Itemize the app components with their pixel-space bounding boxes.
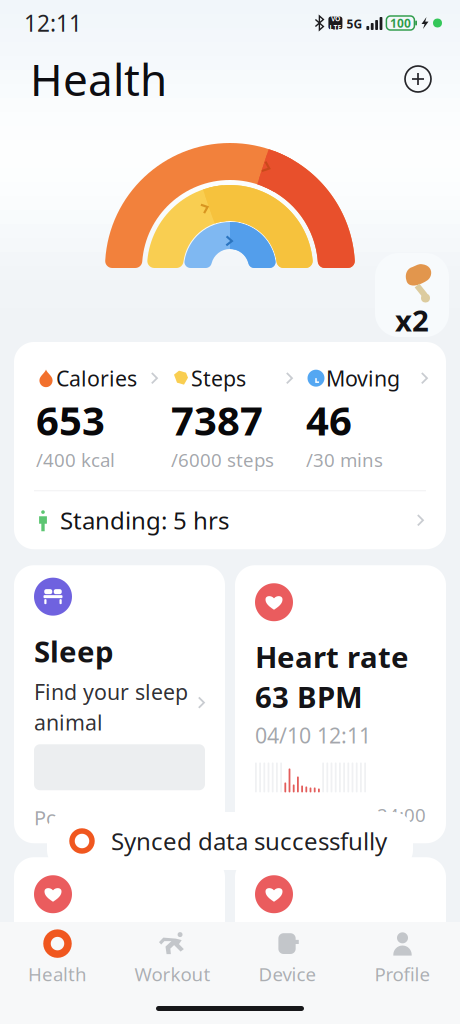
button[interactable]: Standing: 5 hrs [14, 491, 446, 549]
staticText: 100 [390, 15, 411, 31]
button[interactable]: Workout [115, 922, 230, 994]
staticText: Synced data successfully [111, 825, 387, 857]
staticText: Heart rate [255, 637, 409, 676]
staticText: Health [30, 50, 167, 108]
staticText: /30 mins [306, 447, 383, 472]
button[interactable]: Calories [36, 364, 171, 472]
staticText: 653 [36, 393, 105, 446]
staticText: Steps [191, 364, 246, 392]
staticText: x2 [395, 300, 429, 339]
button[interactable]: Steps [171, 364, 306, 472]
staticText: /6000 steps [171, 447, 274, 472]
staticText: Profile [374, 962, 430, 986]
staticText: 12:11 [24, 8, 82, 38]
staticText: Find your sleep [34, 678, 188, 706]
staticText: 5G [346, 16, 362, 32]
button[interactable]: Health [0, 922, 115, 994]
staticText: 24:00 [377, 802, 426, 827]
staticText: Calories [56, 364, 137, 392]
staticText: LTE [329, 23, 341, 32]
button[interactable]: Profile [345, 922, 460, 994]
staticText: Health [28, 962, 87, 986]
button[interactable]: Sleep [14, 565, 225, 843]
staticText: Standing: 5 hrs [60, 504, 229, 536]
staticText: Poor [34, 804, 78, 831]
button[interactable]: Moving [306, 364, 441, 472]
button[interactable]: Heart rate [235, 565, 446, 843]
staticText: 63 BPM [255, 677, 363, 716]
staticText: Device [258, 962, 316, 986]
staticText: animal [34, 708, 103, 736]
button[interactable]: Add [394, 55, 442, 103]
staticText: Workout [134, 962, 210, 986]
button[interactable] [14, 857, 225, 977]
staticText: Moving [326, 364, 400, 392]
staticText: 46 [306, 393, 352, 446]
staticText: VO [331, 14, 340, 23]
button[interactable]: Reward drumstick times two [375, 253, 449, 337]
staticText: Sleep [34, 632, 114, 671]
staticText: 04/10 12:11 [255, 721, 371, 749]
staticText: /400 kcal [36, 447, 115, 472]
button[interactable] [235, 857, 446, 977]
button[interactable]: Device [230, 922, 345, 994]
staticText: 7387 [171, 393, 263, 446]
